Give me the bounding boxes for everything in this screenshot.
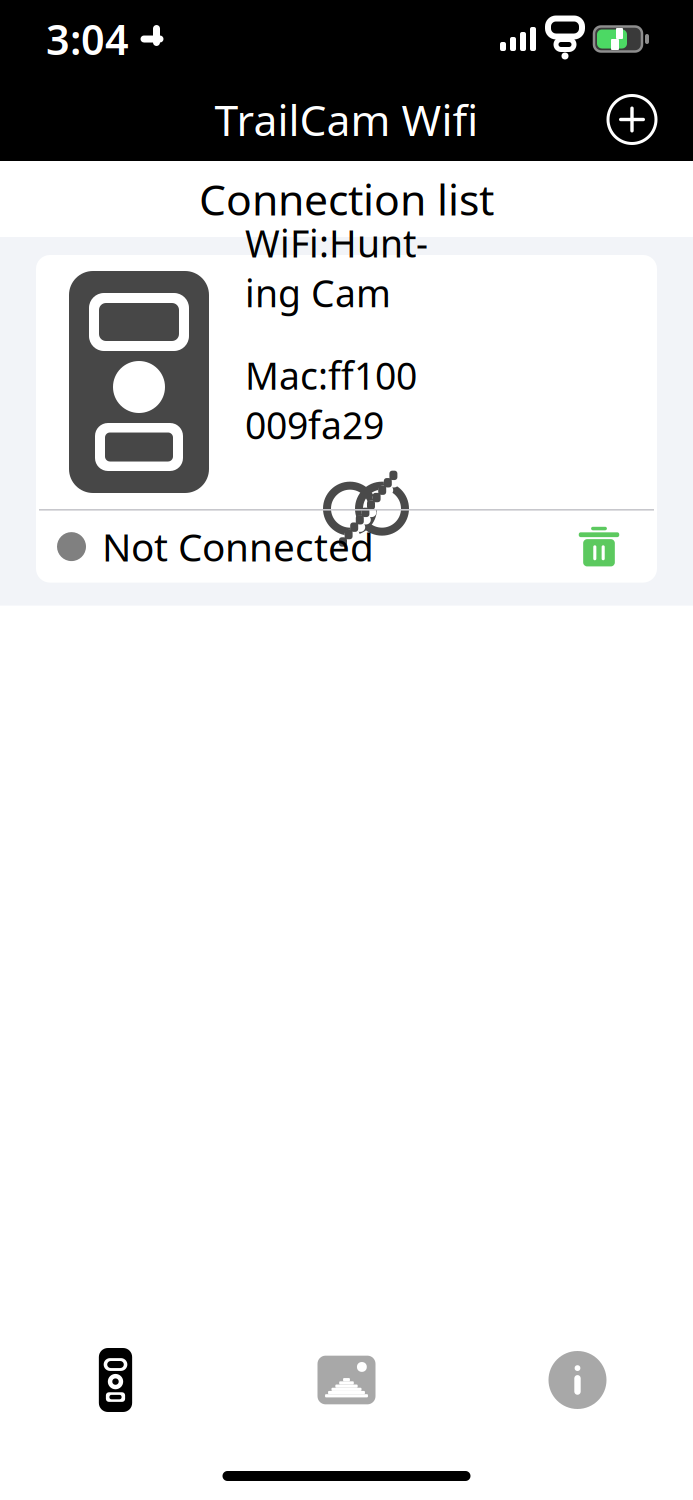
button[interactable]: Cameras xyxy=(0,1330,231,1430)
button[interactable]: WiFi:Hunting Cam xyxy=(36,255,657,583)
staticText: WiFi:Hunting Cam xyxy=(245,218,428,317)
staticText: 3:04 xyxy=(46,12,129,66)
staticText: Connection list xyxy=(199,171,494,227)
button[interactable]: Delete connection xyxy=(565,513,633,581)
staticText: TrailCam Wifi xyxy=(214,91,478,148)
button[interactable]: Gallery xyxy=(231,1330,462,1430)
button[interactable]: Info xyxy=(462,1330,693,1430)
staticText: Mac:ff100009fa29 xyxy=(245,350,417,450)
button[interactable]: Add connection xyxy=(597,84,667,154)
staticText: Not Connected xyxy=(102,521,374,572)
